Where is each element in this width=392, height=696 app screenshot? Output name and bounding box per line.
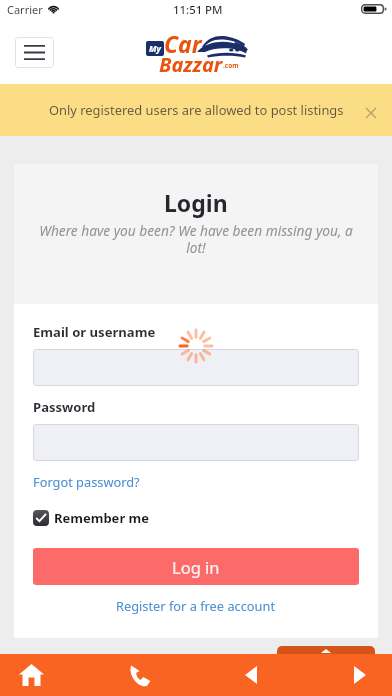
staticText: .com bbox=[223, 61, 239, 70]
button[interactable]: Expand panel bbox=[277, 646, 375, 654]
staticText: Log in bbox=[172, 556, 220, 578]
button[interactable]: Close bbox=[357, 99, 385, 127]
button[interactable]: Menu bbox=[15, 37, 54, 68]
staticText: Carrier bbox=[7, 2, 43, 17]
button[interactable]: Forgot password? bbox=[33, 473, 140, 490]
button[interactable]: Remember me bbox=[33, 509, 150, 527]
button[interactable]: Home bbox=[0, 654, 62, 696]
staticText: Email or username bbox=[33, 323, 156, 341]
staticText: My bbox=[149, 43, 161, 55]
button[interactable]: Call bbox=[109, 654, 171, 696]
button[interactable]: Forward bbox=[329, 654, 391, 696]
staticText: Register for a free account bbox=[116, 597, 276, 614]
staticText: Password bbox=[33, 398, 96, 416]
staticText: 11:51 PM bbox=[173, 2, 223, 18]
button[interactable]: Register for a free account bbox=[33, 597, 359, 614]
staticText: Car bbox=[164, 28, 202, 59]
button[interactable]: Log in bbox=[33, 548, 359, 585]
staticText: Login bbox=[164, 187, 228, 218]
staticText: Remember me bbox=[54, 509, 150, 527]
button[interactable]: Back bbox=[220, 654, 282, 696]
staticText: Forgot password? bbox=[33, 473, 140, 490]
staticText: Bazzar bbox=[159, 51, 223, 78]
staticText: Only registered users are allowed to pos… bbox=[49, 101, 344, 119]
staticText: Where have you been? We have been missin… bbox=[31, 221, 361, 257]
